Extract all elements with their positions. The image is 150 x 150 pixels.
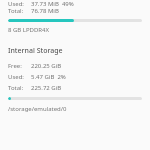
staticText: 76.78 MiB (31, 7, 59, 15)
button[interactable]: Used: (0, 0, 150, 6)
staticText: Used: (8, 73, 24, 81)
staticText: 225.72 GiB (31, 84, 62, 92)
button[interactable]: Total: (0, 7, 150, 15)
staticText: 37.73 MiB 49% (31, 0, 74, 6)
staticText: 8 GB LPDDR4X (8, 26, 50, 34)
button[interactable]: Used: (0, 73, 150, 81)
staticText: Internal Storage (8, 46, 63, 56)
staticText: 220.25 GiB (31, 62, 62, 70)
button[interactable]: Total: (0, 84, 150, 92)
staticText: Free: (8, 62, 22, 70)
staticText: Total: (8, 84, 24, 92)
staticText: Used: (8, 0, 24, 6)
staticText: 5.47 GiB 2% (31, 73, 66, 81)
button[interactable]: Free: (0, 62, 150, 70)
button[interactable] (0, 97, 150, 100)
staticText: Total: (8, 7, 24, 15)
button[interactable] (0, 19, 150, 22)
staticText: /storage/emulated/0 (8, 105, 67, 113)
